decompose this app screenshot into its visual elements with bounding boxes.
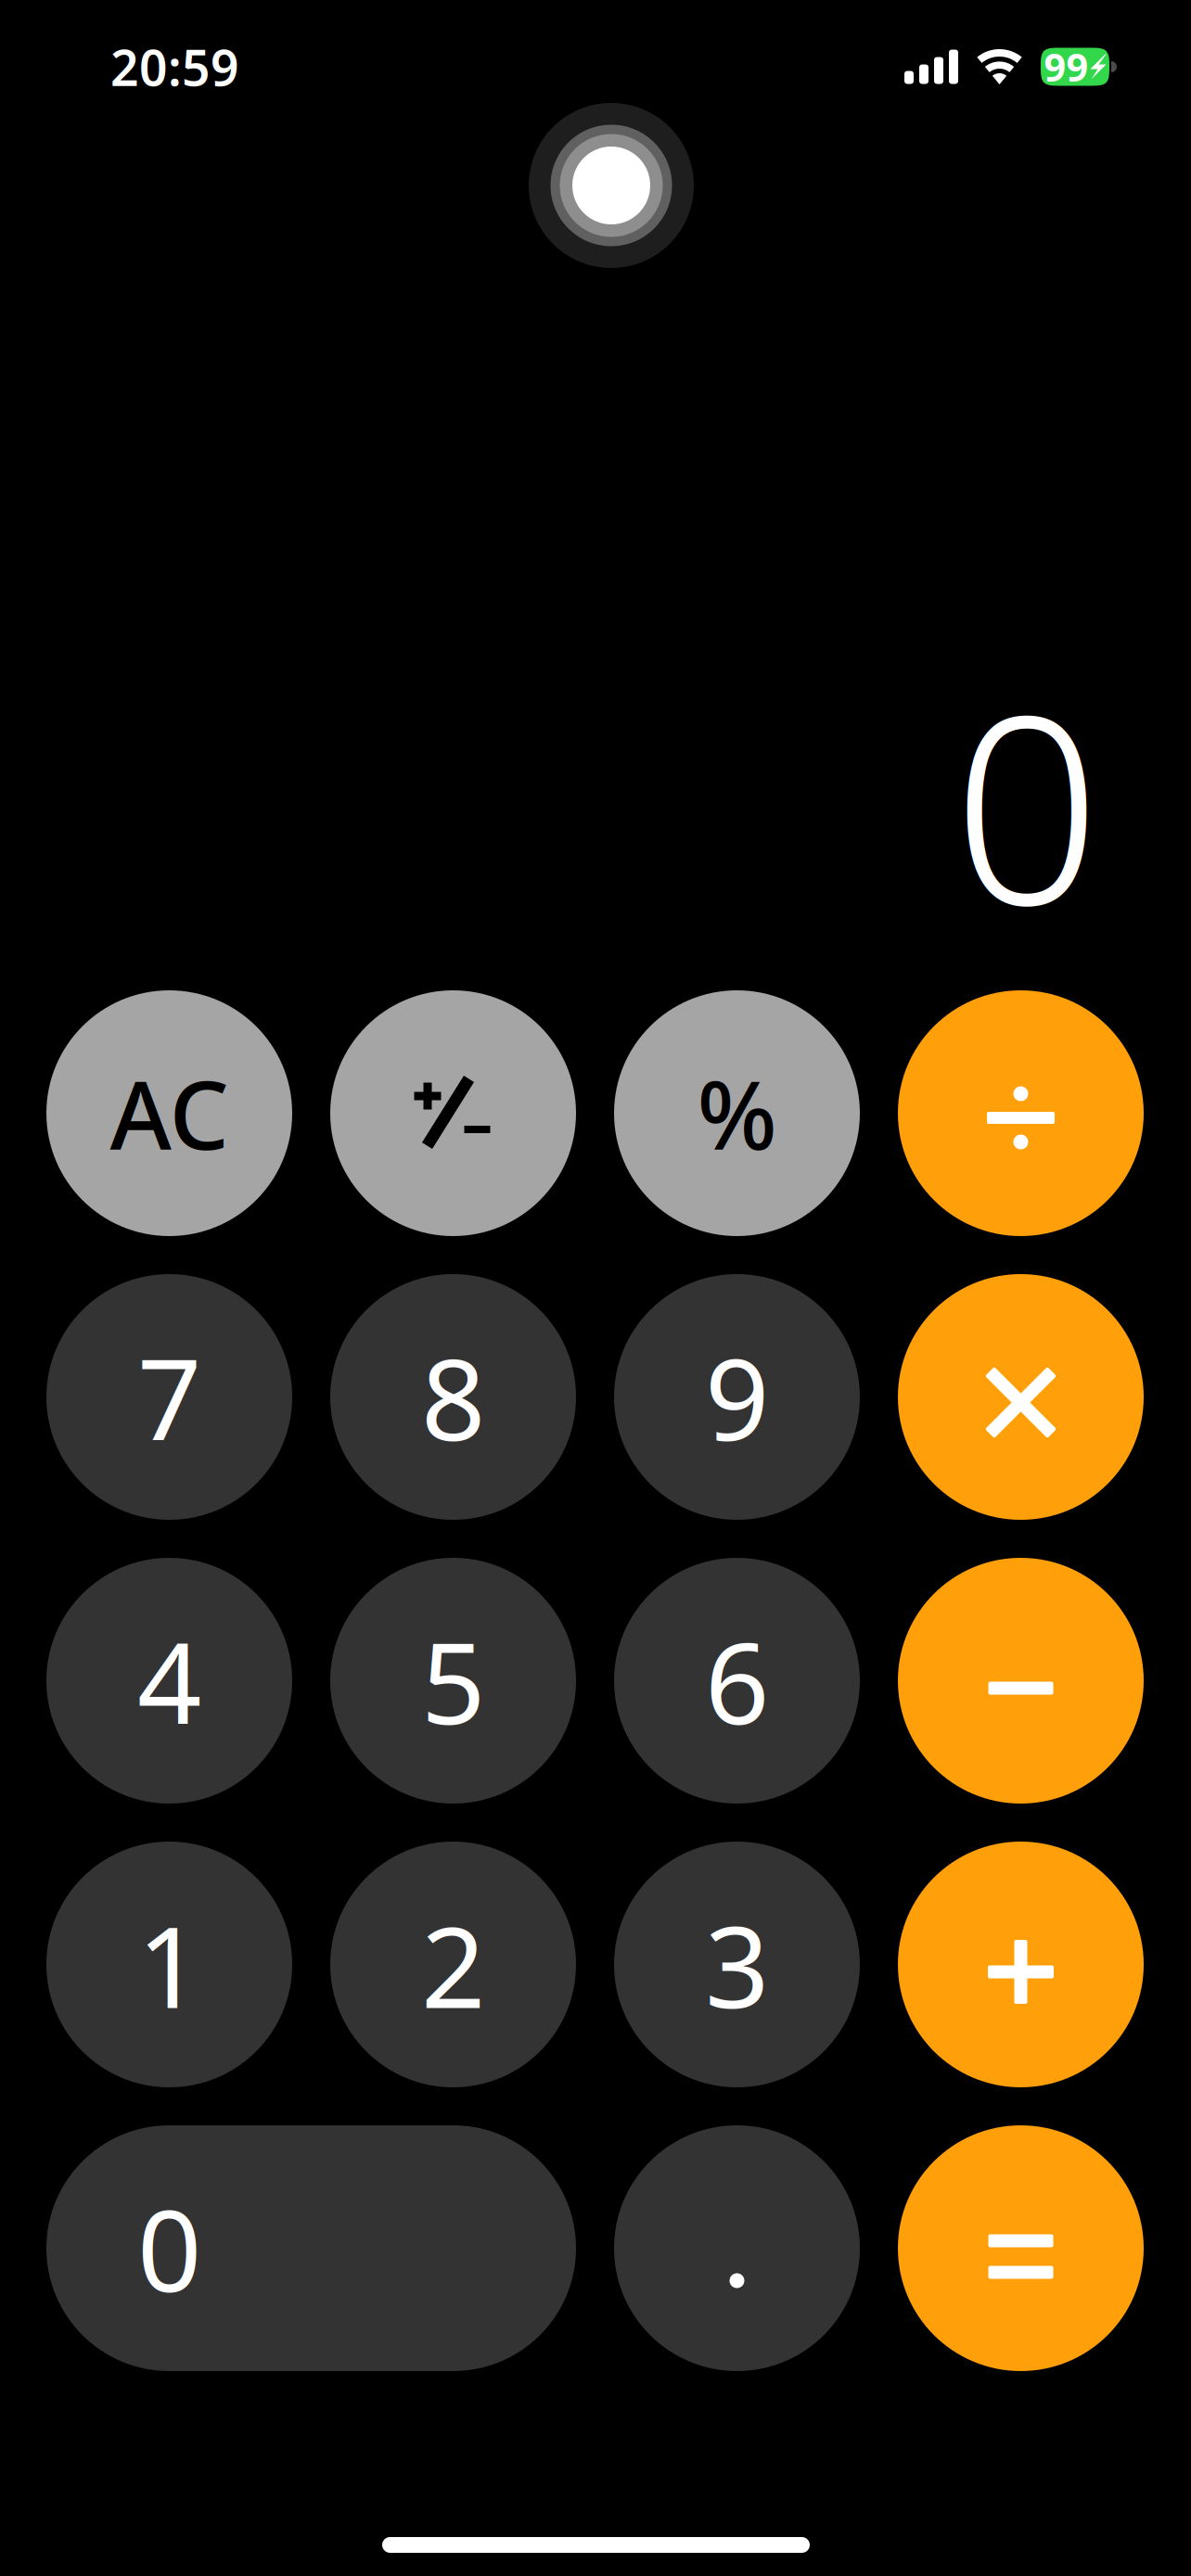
button[interactable]: % [614,990,860,1236]
button[interactable]: Minus [898,1558,1144,1804]
staticText: 6 [705,1606,769,1755]
staticText: 7 [137,1322,201,1472]
button[interactable]: AC [46,990,292,1236]
button[interactable]: Decimal point [614,2125,860,2371]
button[interactable]: 2 [330,1842,576,2087]
button[interactable]: 7 [46,1274,292,1520]
staticText: AC [110,1051,229,1176]
button[interactable]: Multiply [898,1274,1144,1520]
staticText: 0 [953,631,1101,975]
staticText: 8 [421,1322,485,1472]
staticText: % [697,1051,777,1176]
staticText: 5 [421,1606,485,1755]
button[interactable]: 9 [614,1274,860,1520]
staticText: 1 [137,1890,201,2039]
button[interactable]: 3 [614,1842,860,2087]
button[interactable]: Equals [898,2125,1144,2371]
button[interactable]: Plus [898,1842,1144,2087]
staticText: 20:59 [110,34,239,100]
button[interactable]: 8 [330,1274,576,1520]
staticText: 99 [1044,41,1089,92]
button[interactable]: 0 [46,2125,576,2371]
staticText: 0 [137,2173,201,2323]
staticText: 3 [705,1890,769,2039]
button[interactable]: Divide [898,990,1144,1236]
button[interactable]: 5 [330,1558,576,1804]
staticText: 4 [137,1606,201,1755]
button[interactable]: AssistiveTouch [529,103,694,268]
button[interactable]: Plus minus [330,990,576,1236]
button[interactable]: 4 [46,1558,292,1804]
button[interactable]: 6 [614,1558,860,1804]
staticText: 9 [705,1322,769,1472]
button[interactable]: 1 [46,1842,292,2087]
staticText: 2 [421,1890,485,2039]
